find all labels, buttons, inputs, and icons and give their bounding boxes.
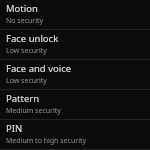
- staticText: No security: [6, 16, 44, 26]
- staticText: Medium security: [6, 106, 61, 116]
- button[interactable]: PIN: [0, 120, 150, 149]
- staticText: Pattern: [6, 92, 40, 105]
- staticText: Face unlock: [6, 32, 59, 45]
- button[interactable]: Pattern: [0, 90, 150, 119]
- staticText: Medium to high security: [6, 136, 87, 146]
- staticText: PIN: [6, 122, 23, 135]
- staticText: Face and voice: [6, 62, 72, 75]
- button[interactable]: Face and voice: [0, 60, 150, 89]
- button[interactable]: Face unlock: [0, 30, 150, 59]
- button[interactable]: Motion: [0, 0, 150, 29]
- staticText: Low security: [6, 46, 47, 56]
- staticText: Low security: [6, 76, 47, 86]
- staticText: Motion: [6, 2, 38, 15]
